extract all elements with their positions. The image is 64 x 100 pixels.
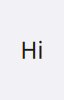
staticText: Hi xyxy=(20,35,43,65)
